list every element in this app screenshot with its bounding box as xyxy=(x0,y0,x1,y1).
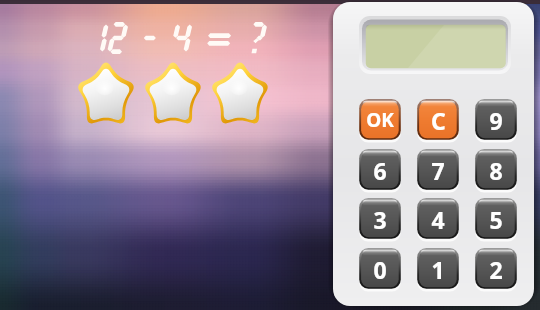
staticText: 0 xyxy=(373,254,387,285)
button[interactable]: 2 xyxy=(475,248,517,292)
button[interactable]: 1 xyxy=(417,248,459,292)
staticText: 2 xyxy=(489,254,503,285)
button[interactable]: 5 xyxy=(475,198,517,242)
button[interactable]: 8 xyxy=(475,149,517,193)
button[interactable]: C xyxy=(417,99,459,143)
staticText: 1 xyxy=(431,254,445,285)
staticText: 4 xyxy=(431,204,445,235)
staticText: 8 xyxy=(489,155,503,186)
staticText: C xyxy=(431,105,446,136)
staticText: 3 xyxy=(373,204,387,235)
staticText: 5 xyxy=(489,204,503,235)
button[interactable]: 9 xyxy=(475,99,517,143)
button[interactable]: 0 xyxy=(359,248,401,292)
button[interactable]: 7 xyxy=(417,149,459,193)
staticText: 6 xyxy=(373,155,387,186)
button[interactable]: OK xyxy=(359,99,401,143)
staticText: 9 xyxy=(489,105,503,136)
staticText: OK xyxy=(366,107,394,133)
button[interactable]: 4 xyxy=(417,198,459,242)
button[interactable]: 3 xyxy=(359,198,401,242)
staticText: 7 xyxy=(431,155,445,186)
button[interactable]: 6 xyxy=(359,149,401,193)
